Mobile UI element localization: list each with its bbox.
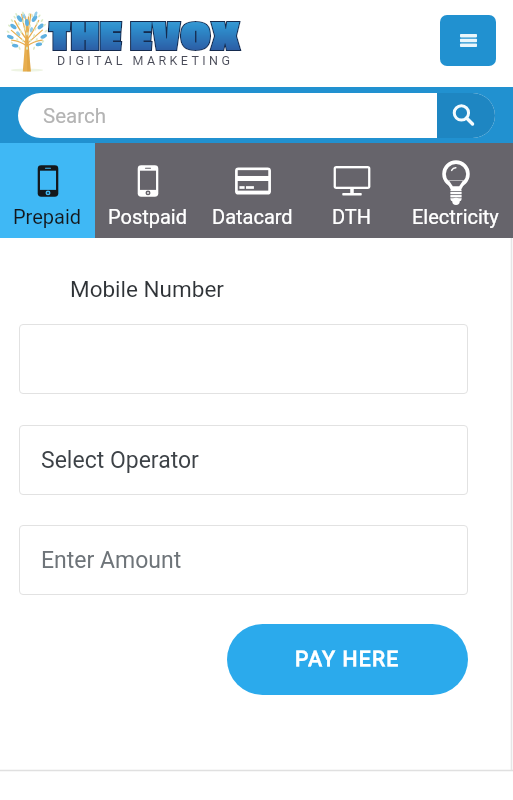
staticText: Prepaid	[13, 205, 82, 228]
staticText: DTH	[332, 205, 372, 228]
staticText: DIGITAL MARKETING	[57, 53, 234, 68]
staticText: Select Operator	[41, 447, 199, 474]
button[interactable]: Select Operator	[19, 425, 468, 495]
button[interactable]: Search	[437, 93, 495, 138]
staticText: Search	[43, 104, 106, 128]
button[interactable]: Datacard	[200, 143, 305, 238]
button[interactable]: DTH	[305, 143, 398, 238]
staticText: Enter Amount	[41, 547, 182, 574]
button[interactable]: Prepaid	[0, 143, 95, 238]
staticText: Datacard	[212, 205, 293, 228]
staticText: Mobile Number	[70, 276, 224, 302]
button[interactable]: Electricity	[398, 143, 513, 238]
button[interactable]: PAY HERE	[227, 624, 468, 695]
button[interactable]: Postpaid	[95, 143, 200, 238]
button[interactable]: Search	[18, 93, 437, 138]
staticText: PAY HERE	[295, 647, 400, 672]
staticText: THE EVOX	[49, 13, 241, 61]
staticText: THE EVOX	[49, 13, 241, 61]
button[interactable]: Menu	[440, 15, 496, 66]
button[interactable]	[19, 324, 468, 394]
staticText: Electricity	[412, 205, 499, 228]
staticText: Postpaid	[108, 205, 188, 228]
button[interactable]: Enter Amount	[19, 525, 468, 595]
